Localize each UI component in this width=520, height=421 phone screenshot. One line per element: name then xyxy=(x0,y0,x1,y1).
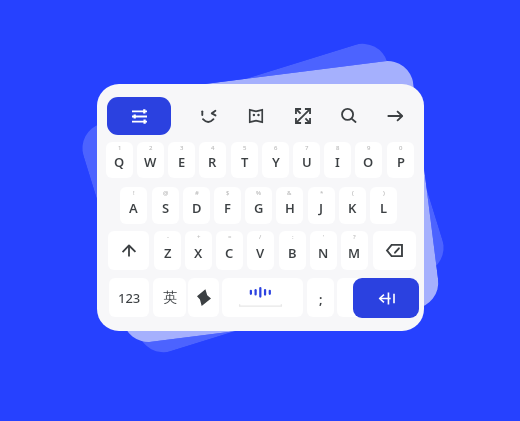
button[interactable]: Emoji xyxy=(191,97,227,135)
staticText: ! xyxy=(133,189,135,197)
button[interactable]: # xyxy=(183,187,210,224)
staticText: R xyxy=(208,153,217,171)
staticText: M xyxy=(348,244,361,262)
staticText: 3 xyxy=(180,144,184,152)
button[interactable]: / xyxy=(247,231,274,270)
staticText: E xyxy=(178,153,186,171)
staticText: U xyxy=(302,153,312,171)
staticText: 5 xyxy=(243,144,247,152)
staticText: J xyxy=(319,199,324,217)
staticText: 4 xyxy=(211,144,215,152)
button[interactable]: & xyxy=(276,187,303,224)
staticText: : xyxy=(292,233,294,241)
button[interactable]: 9 xyxy=(355,142,382,178)
staticText: ? xyxy=(353,233,356,241)
staticText: A xyxy=(129,199,138,217)
staticText: ' xyxy=(323,233,325,241)
staticText: & xyxy=(287,189,292,197)
button[interactable]: * xyxy=(308,187,335,224)
staticText: V xyxy=(256,244,265,262)
staticText: $ xyxy=(226,189,230,197)
button[interactable]: Enter xyxy=(353,278,419,318)
staticText: 0 xyxy=(399,144,403,152)
button[interactable]: 123 xyxy=(109,278,149,317)
staticText: B xyxy=(288,244,297,262)
staticText: 8 xyxy=(336,144,340,152)
button[interactable]: - xyxy=(154,231,181,270)
staticText: L xyxy=(380,199,388,217)
button[interactable]: Space xyxy=(222,278,303,317)
button[interactable]: = xyxy=(216,231,243,270)
staticText: ) xyxy=(383,189,385,197)
staticText: W xyxy=(144,153,157,171)
button[interactable]: ) xyxy=(370,187,397,224)
staticText: / xyxy=(259,233,262,241)
button[interactable]: Voice input xyxy=(188,278,219,317)
staticText: O xyxy=(363,153,374,171)
button[interactable]: Stickers xyxy=(238,97,274,135)
button[interactable]: ; xyxy=(307,278,334,317)
button[interactable]: Next xyxy=(377,97,413,135)
button[interactable]: 8 xyxy=(324,142,351,178)
staticText: @ xyxy=(163,189,169,197)
staticText: K xyxy=(348,199,357,217)
staticText: Y xyxy=(272,153,280,171)
staticText: ; xyxy=(319,291,323,307)
button[interactable]: @ xyxy=(152,187,179,224)
button[interactable]: 6 xyxy=(262,142,289,178)
button[interactable]: 1 xyxy=(106,142,133,178)
button[interactable]: $ xyxy=(214,187,241,224)
staticText: # xyxy=(195,189,199,197)
staticText: H xyxy=(285,199,295,217)
button[interactable]: Search xyxy=(331,97,367,135)
button[interactable]: 5 xyxy=(231,142,258,178)
staticText: Q xyxy=(114,153,125,171)
staticText: F xyxy=(224,199,231,217)
button[interactable]: ! xyxy=(120,187,147,224)
button[interactable]: Expand keyboard xyxy=(285,97,321,135)
staticText: % xyxy=(256,189,261,197)
staticText: - xyxy=(167,233,169,241)
staticText: 英 xyxy=(163,289,177,307)
staticText: C xyxy=(225,244,234,262)
button[interactable]: ( xyxy=(339,187,366,224)
staticText: 2 xyxy=(149,144,153,152)
button[interactable]: Keyboard settings xyxy=(107,97,171,135)
button[interactable]: Backspace xyxy=(373,231,416,270)
staticText: + xyxy=(197,233,201,241)
button[interactable]: ? xyxy=(341,231,368,270)
staticText: D xyxy=(192,199,202,217)
staticText: * xyxy=(320,189,324,197)
button[interactable]: % xyxy=(245,187,272,224)
button[interactable]: 3 xyxy=(168,142,195,178)
button[interactable]: 0 xyxy=(387,142,414,178)
button[interactable]: 4 xyxy=(199,142,226,178)
button[interactable]: Shift xyxy=(108,231,149,270)
staticText: 1 xyxy=(118,144,122,152)
staticText: T xyxy=(241,153,249,171)
button[interactable]: 7 xyxy=(293,142,320,178)
staticText: 7 xyxy=(305,144,309,152)
staticText: N xyxy=(318,244,329,262)
staticText: S xyxy=(162,199,170,217)
staticText: 9 xyxy=(367,144,371,152)
staticText: G xyxy=(254,199,264,217)
staticText: I xyxy=(335,153,340,171)
staticText: = xyxy=(228,233,232,241)
button[interactable]: ' xyxy=(310,231,337,270)
button[interactable]: 英 xyxy=(153,278,186,317)
staticText: 6 xyxy=(274,144,278,152)
staticText: X xyxy=(194,244,203,262)
button[interactable]: 2 xyxy=(137,142,164,178)
button[interactable]: + xyxy=(185,231,212,270)
staticText: ( xyxy=(352,189,354,197)
staticText: Z xyxy=(164,244,172,262)
button[interactable]: : xyxy=(279,231,306,270)
staticText: 123 xyxy=(118,289,141,307)
staticText: P xyxy=(397,153,405,171)
